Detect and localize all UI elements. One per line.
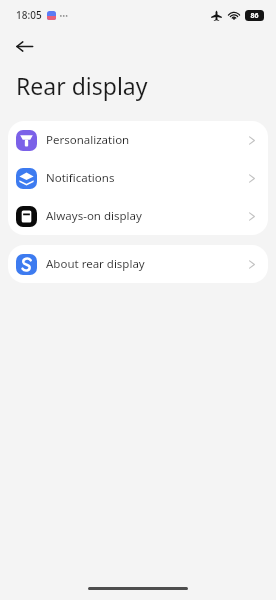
staticText: Rear display xyxy=(16,70,148,101)
button[interactable]: Back xyxy=(8,30,40,62)
button[interactable]: Always-on display xyxy=(8,197,268,235)
staticText: 86 xyxy=(250,11,259,21)
staticText: 18:05 xyxy=(16,8,42,22)
staticText: Notifications xyxy=(46,170,248,186)
button[interactable]: Personalization xyxy=(8,121,268,159)
button[interactable]: About rear display xyxy=(8,245,268,283)
staticText: About rear display xyxy=(46,256,248,272)
staticText: Always-on display xyxy=(46,208,248,224)
button[interactable]: Notifications xyxy=(8,159,268,197)
staticText: Personalization xyxy=(46,132,248,148)
